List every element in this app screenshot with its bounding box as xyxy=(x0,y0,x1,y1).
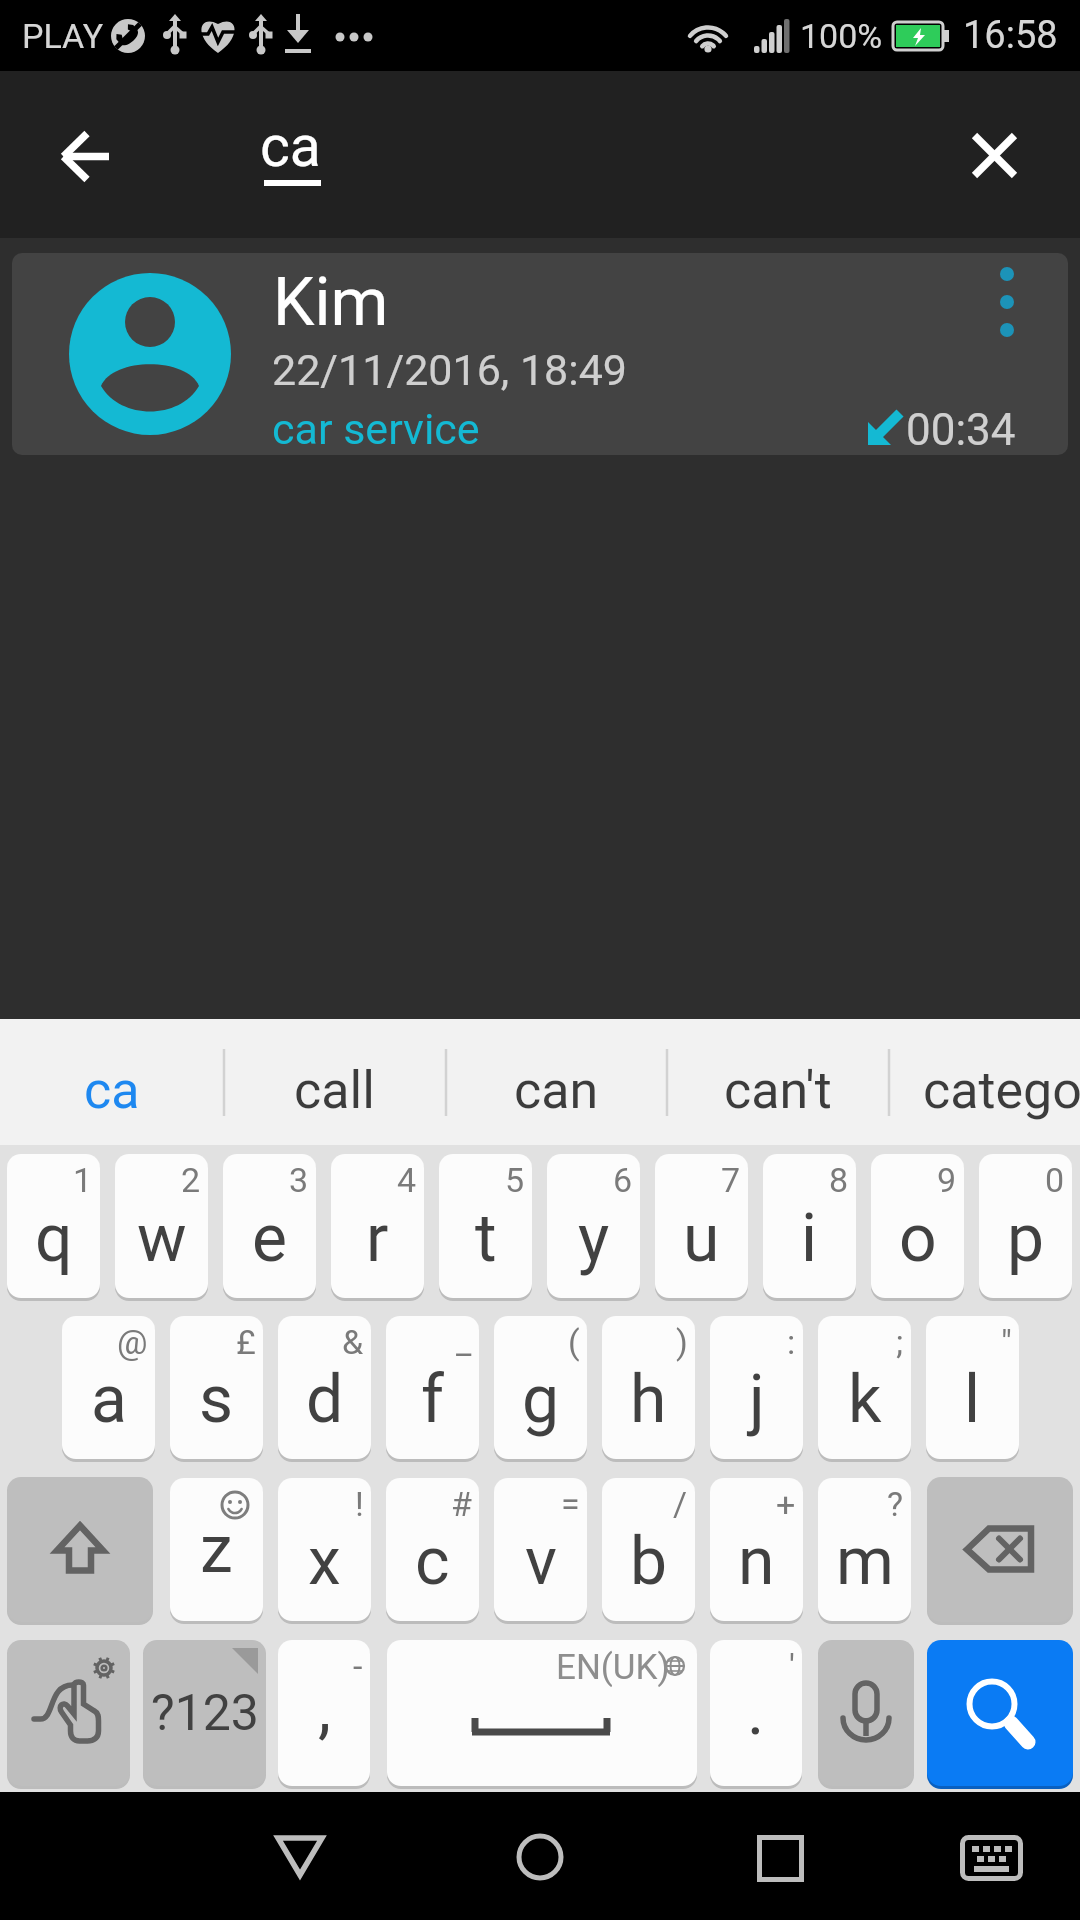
button[interactable]: Shift xyxy=(7,1477,153,1622)
staticText: ? xyxy=(887,1484,904,1524)
button[interactable]: call xyxy=(223,1027,445,1153)
button[interactable]: ' xyxy=(710,1640,802,1786)
staticText: a xyxy=(91,1361,127,1438)
button[interactable]: + xyxy=(710,1478,803,1621)
staticText: t xyxy=(475,1200,497,1277)
staticText: ca xyxy=(84,1060,140,1121)
button[interactable]: can't xyxy=(667,1027,889,1153)
button[interactable]: Search xyxy=(927,1640,1073,1786)
staticText: 2 xyxy=(181,1160,201,1200)
staticText: 5 xyxy=(505,1160,525,1200)
button[interactable]: Backspace xyxy=(927,1477,1073,1622)
button[interactable]: Input settings xyxy=(7,1640,130,1786)
staticText: 100% xyxy=(800,16,883,56)
button[interactable]: ! xyxy=(278,1478,371,1621)
staticText: z xyxy=(200,1511,233,1588)
button[interactable]: Kim xyxy=(12,253,1068,455)
staticText: 22/11/2016, 18:49 xyxy=(272,345,628,395)
staticText: catego xyxy=(923,1060,1080,1121)
staticText: " xyxy=(1001,1322,1012,1362)
button[interactable]: ? xyxy=(818,1478,911,1621)
staticText: p xyxy=(1007,1200,1045,1277)
button[interactable]: catego xyxy=(891,1027,1080,1153)
button[interactable]: ca xyxy=(240,93,540,216)
staticText: q xyxy=(35,1200,73,1277)
staticText: i xyxy=(801,1200,818,1277)
staticText: car service xyxy=(272,404,480,454)
button[interactable]: @ xyxy=(62,1316,155,1459)
button[interactable]: Voice input xyxy=(818,1640,914,1786)
staticText: _ xyxy=(456,1322,472,1362)
button[interactable]: 9 xyxy=(871,1154,964,1298)
button[interactable]: Hide keyboard xyxy=(910,1792,1070,1920)
button[interactable]: can xyxy=(445,1027,667,1153)
staticText: 1 xyxy=(73,1160,93,1200)
button[interactable]: £ xyxy=(170,1316,263,1459)
button[interactable]: ) xyxy=(602,1316,695,1459)
staticText: w xyxy=(137,1200,187,1277)
staticText: EN(UK) xyxy=(556,1647,670,1688)
button[interactable]: 3 xyxy=(223,1154,316,1298)
staticText: r xyxy=(366,1200,389,1277)
button[interactable]: Back xyxy=(20,93,148,216)
button[interactable]: 0 xyxy=(979,1154,1072,1298)
staticText: b xyxy=(630,1523,668,1600)
button[interactable]: Space xyxy=(387,1640,697,1786)
staticText: 7 xyxy=(721,1160,741,1200)
button[interactable]: Home xyxy=(460,1792,620,1920)
staticText: call xyxy=(294,1060,375,1121)
button[interactable]: 5 xyxy=(439,1154,532,1298)
button[interactable]: _ xyxy=(386,1316,479,1459)
staticText: 9 xyxy=(937,1160,957,1200)
staticText: j xyxy=(749,1361,765,1438)
button[interactable]: " xyxy=(926,1316,1019,1459)
staticText: ! xyxy=(355,1484,364,1524)
staticText: # xyxy=(451,1484,472,1524)
button[interactable]: = xyxy=(494,1478,587,1621)
button[interactable]: ?123 xyxy=(143,1640,266,1786)
button[interactable]: Recents xyxy=(700,1792,860,1920)
staticText: ( xyxy=(568,1322,580,1362)
staticText: PLAY xyxy=(22,16,104,56)
staticText: y xyxy=(578,1200,610,1277)
staticText: - xyxy=(353,1646,363,1686)
staticText: . xyxy=(747,1673,765,1750)
staticText: c xyxy=(415,1523,450,1600)
staticText: 4 xyxy=(397,1160,417,1200)
staticText: u xyxy=(683,1200,720,1277)
button[interactable]: More options xyxy=(964,253,1056,353)
button[interactable]: Clear xyxy=(934,93,1062,216)
staticText: ?123 xyxy=(151,1684,259,1743)
button[interactable]: 7 xyxy=(655,1154,748,1298)
staticText: 8 xyxy=(829,1160,849,1200)
button[interactable]: 1 xyxy=(7,1154,100,1298)
staticText: f xyxy=(421,1361,444,1438)
staticText: h xyxy=(630,1361,667,1438)
staticText: 3 xyxy=(289,1160,309,1200)
staticText: @ xyxy=(117,1322,148,1362)
button[interactable]: 2 xyxy=(115,1154,208,1298)
button[interactable]: / xyxy=(602,1478,695,1621)
staticText: 0 xyxy=(1045,1160,1065,1200)
button[interactable]: ( xyxy=(494,1316,587,1459)
button[interactable]: ca xyxy=(1,1027,223,1153)
button[interactable]: z xyxy=(170,1478,263,1621)
staticText: d xyxy=(306,1361,344,1438)
button[interactable]: Back xyxy=(220,1792,380,1920)
staticText: m xyxy=(836,1523,894,1600)
button[interactable]: - xyxy=(278,1640,370,1786)
staticText: o xyxy=(899,1200,937,1277)
staticText: k xyxy=(848,1361,882,1438)
button[interactable]: 8 xyxy=(763,1154,856,1298)
staticText: ' xyxy=(789,1646,795,1686)
staticText: ) xyxy=(676,1322,688,1362)
staticText: ca xyxy=(260,113,321,180)
button[interactable]: & xyxy=(278,1316,371,1459)
button[interactable]: 4 xyxy=(331,1154,424,1298)
staticText: = xyxy=(561,1484,580,1524)
staticText: x xyxy=(308,1523,341,1600)
button[interactable]: # xyxy=(386,1478,479,1621)
button[interactable]: 6 xyxy=(547,1154,640,1298)
button[interactable]: ; xyxy=(818,1316,911,1459)
button[interactable]: : xyxy=(710,1316,803,1459)
